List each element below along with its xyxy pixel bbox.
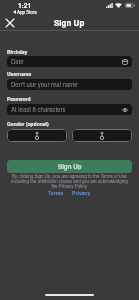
staticText: At least 8 characters (11, 105, 66, 114)
staticText: Date (11, 57, 24, 66)
staticText: 1:21 (18, 1, 32, 10)
staticText: Password (7, 95, 31, 102)
staticText: Sign Up (58, 162, 82, 171)
staticText: Gender (optional) (7, 120, 49, 127)
staticText: By clicking Sign Up, you are agreeing to… (12, 173, 127, 179)
staticText: App Store (17, 9, 37, 15)
button[interactable]: Date (7, 56, 132, 67)
button[interactable]: Don't use your real name (7, 79, 132, 90)
button[interactable]: Female (7, 129, 67, 142)
staticText: Sign Up (54, 17, 85, 28)
staticText: including the arbitration clause and you… (11, 178, 128, 184)
staticText: the Privacy Policy. (51, 183, 88, 189)
button[interactable]: Privacy (72, 189, 91, 196)
button[interactable]: Sign Up (7, 160, 132, 173)
button[interactable]: At least 8 characters (7, 104, 132, 115)
staticText: Username (7, 70, 32, 77)
button[interactable]: Male (72, 129, 132, 142)
button[interactable]: Terms (48, 189, 64, 196)
staticText: Birthday (7, 48, 28, 55)
staticText: Don't use your real name (11, 80, 78, 89)
button[interactable]: Close (2, 15, 17, 30)
